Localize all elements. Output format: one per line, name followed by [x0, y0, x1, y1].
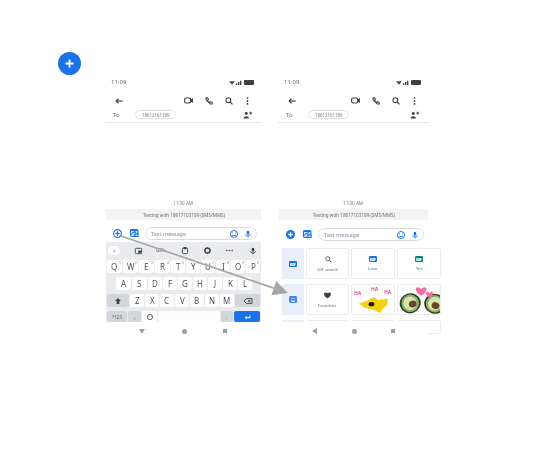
button[interactable]: Call [202, 94, 215, 107]
button[interactable]: Video call [182, 94, 195, 107]
staticText: Texting with 18617103189 (SMS/MMS) [143, 212, 225, 218]
button[interactable]: GIF category [282, 248, 304, 279]
button[interactable]: Search [222, 94, 235, 107]
button[interactable]: Voice message [410, 230, 419, 239]
button[interactable]: GIFs [156, 247, 166, 253]
button[interactable]: Home [349, 326, 359, 336]
button[interactable] [397, 320, 441, 334]
button[interactable]: Back [137, 326, 147, 336]
button[interactable]: Add [58, 52, 81, 75]
staticText: 18612161189 [315, 112, 343, 118]
button[interactable]: U [201, 260, 215, 273]
button[interactable]: Stickers [128, 227, 140, 239]
staticText: W [127, 261, 135, 272]
staticText: U [205, 261, 211, 272]
button[interactable]: HA [351, 284, 395, 315]
staticText: Favorites [318, 302, 337, 308]
button[interactable]: T [171, 260, 185, 273]
button[interactable]: Stickers [134, 246, 143, 255]
button[interactable]: Backspace [235, 294, 260, 307]
button[interactable]: Voice input [248, 246, 257, 255]
button[interactable]: W [123, 260, 138, 273]
staticText: ?123 [112, 314, 122, 320]
button[interactable]: K [223, 277, 237, 290]
button[interactable]: More options [242, 95, 253, 106]
staticText: 11:00 AM [343, 200, 364, 206]
button[interactable]: Call [369, 94, 382, 107]
button[interactable]: Sticker category [282, 284, 304, 315]
button[interactable]: J [208, 277, 222, 290]
button[interactable]: O [231, 260, 245, 273]
button[interactable]: Back [112, 94, 125, 107]
staticText: GIF [370, 257, 376, 262]
staticText: 6 [197, 261, 199, 265]
button[interactable]: L [238, 277, 252, 290]
button[interactable]: Recent apps [220, 326, 230, 336]
button[interactable]: X [145, 294, 159, 307]
button[interactable]: Emoji [229, 229, 238, 238]
button[interactable]: GIF [351, 248, 395, 279]
button[interactable]: C [160, 294, 174, 307]
button[interactable]: Add contact [408, 109, 420, 121]
button[interactable]: More options [409, 95, 420, 106]
button[interactable]: Voice message [243, 229, 252, 238]
staticText: 0 [257, 261, 259, 265]
button[interactable]: H [193, 277, 207, 290]
staticText: GIF search [317, 266, 339, 272]
button[interactable]: Shift [107, 294, 129, 307]
button[interactable]: Home [179, 326, 189, 336]
staticText: J [214, 278, 217, 289]
staticText: Texting with 18617103189 (SMS/MMS) [313, 212, 395, 218]
button[interactable]: Q [107, 260, 122, 273]
button[interactable]: G [178, 277, 192, 290]
button[interactable]: , [128, 311, 141, 322]
button[interactable]: Send [234, 311, 260, 322]
staticText: T [176, 261, 181, 272]
button[interactable]: Settings [203, 246, 212, 255]
button[interactable]: Back [285, 94, 298, 107]
button[interactable]: P [246, 260, 260, 273]
button[interactable]: A [116, 277, 131, 290]
button[interactable]: R [155, 260, 170, 273]
staticText: . [226, 313, 228, 321]
staticText: I [222, 261, 225, 272]
staticText: 11:09 [111, 78, 127, 86]
button[interactable]: D [148, 277, 162, 290]
button[interactable]: GIF [397, 248, 441, 279]
button[interactable]: Video call [349, 94, 362, 107]
button[interactable]: Text message [318, 228, 424, 241]
button[interactable]: Collapse toolbar [108, 246, 120, 255]
button[interactable]: Y [186, 260, 200, 273]
button[interactable]: Emoji [142, 311, 157, 322]
button[interactable] [306, 320, 349, 334]
button[interactable]: Stickers [301, 228, 313, 240]
button[interactable]: B [190, 294, 204, 307]
button[interactable]: Show attachment options [111, 227, 123, 239]
button[interactable]: . [221, 311, 233, 322]
button[interactable]: Add contact [241, 109, 253, 121]
button[interactable]: Clipboard [180, 246, 189, 255]
staticText: Text message [324, 231, 360, 238]
button[interactable]: S [132, 277, 147, 290]
button[interactable]: E [139, 260, 154, 273]
button[interactable]: Favorites [306, 284, 349, 315]
button[interactable]: GIF search [306, 248, 349, 279]
button[interactable]: Back [309, 326, 319, 336]
button[interactable]: M [220, 294, 234, 307]
button[interactable]: N [205, 294, 219, 307]
button[interactable]: Show attachment options [284, 228, 296, 240]
staticText: Y [191, 261, 196, 272]
button[interactable]: Z [130, 294, 144, 307]
button[interactable] [397, 284, 441, 315]
button[interactable]: I [216, 260, 230, 273]
button[interactable]: More [225, 246, 234, 255]
button[interactable]: Search [389, 94, 402, 107]
button[interactable]: V [175, 294, 189, 307]
button[interactable]: F [163, 277, 177, 290]
button[interactable]: Text message [145, 227, 257, 240]
button[interactable]: ?123 [107, 311, 127, 322]
button[interactable] [351, 320, 395, 334]
button[interactable]: Emoji [396, 230, 405, 239]
button[interactable]: Recent apps [388, 326, 398, 336]
